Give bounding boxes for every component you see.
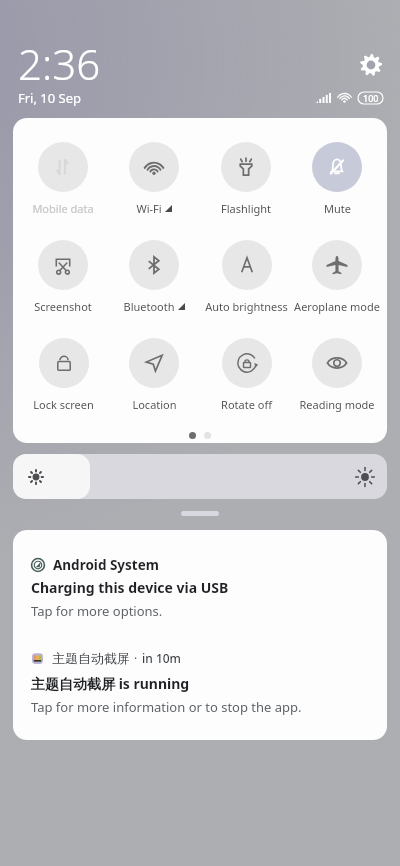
staticText: Auto brightness xyxy=(205,299,288,314)
button[interactable]: Wi-Fi xyxy=(108,142,200,234)
staticText: 主题自动截屏 xyxy=(52,650,130,666)
button[interactable]: Lock screen xyxy=(17,338,109,430)
staticText: Mute xyxy=(324,201,351,216)
button[interactable]: Rotate off xyxy=(200,338,292,430)
staticText: Reading mode xyxy=(299,397,375,412)
button[interactable]: Flashlight xyxy=(200,142,292,234)
staticText: Flashlight xyxy=(221,201,271,216)
staticText: Android System xyxy=(53,556,159,574)
staticText: Screenshot xyxy=(34,299,92,314)
staticText: Charging this device via USB xyxy=(31,578,229,597)
button[interactable]: Screenshot xyxy=(17,240,109,332)
button[interactable]: Auto brightness xyxy=(200,240,292,332)
button[interactable]: Location xyxy=(108,338,200,430)
staticText: Wi-Fi xyxy=(136,201,162,216)
button[interactable]: Mute xyxy=(291,142,383,234)
staticText: · xyxy=(134,650,138,666)
staticText: Location xyxy=(132,397,177,412)
staticText: 2:36 xyxy=(18,35,101,92)
staticText: Mobile data xyxy=(32,201,94,216)
button[interactable]: Bluetooth xyxy=(108,240,200,332)
staticText: Fri, 10 Sep xyxy=(18,89,82,107)
staticText: 100 xyxy=(363,92,379,104)
staticText: Tap for more options. xyxy=(31,602,163,620)
button[interactable]: Settings xyxy=(360,54,382,76)
staticText: Lock screen xyxy=(33,397,94,412)
staticText: Rotate off xyxy=(221,397,272,412)
button[interactable]: Aeroplane mode xyxy=(291,240,383,332)
staticText: in 10m xyxy=(142,650,181,666)
staticText: Bluetooth xyxy=(123,299,175,314)
button[interactable]: Mobile data xyxy=(17,142,109,234)
button[interactable]: Reading mode xyxy=(291,338,383,430)
button[interactable]: Brightness xyxy=(13,454,387,499)
staticText: 主题自动截屏 is running xyxy=(31,674,190,693)
staticText: Aeroplane mode xyxy=(294,299,380,314)
staticText: Tap for more information or to stop the … xyxy=(31,698,302,716)
